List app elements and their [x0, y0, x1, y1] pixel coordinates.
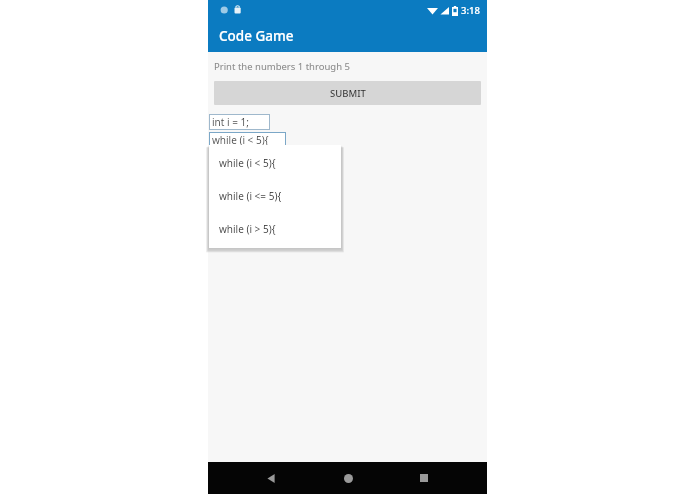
button[interactable]: while (i <= 5){ [209, 171, 341, 204]
button[interactable]: while (i < 5){ [209, 145, 341, 171]
button[interactable]: while (i > 5){ [209, 204, 341, 237]
button[interactable]: SUBMIT [214, 81, 481, 105]
staticText: Print the numbers 1 through 5 [214, 60, 350, 73]
button[interactable]: while (i < 5){ [209, 132, 286, 148]
staticText: while (i < 5){ [212, 133, 269, 147]
button[interactable]: Recent apps [413, 467, 435, 489]
button[interactable]: Back [260, 467, 282, 489]
staticText: while (i < 5){ [219, 156, 276, 170]
button[interactable]: Home [337, 467, 359, 489]
staticText: Code Game [219, 27, 294, 45]
staticText: 3:18 [461, 4, 480, 17]
button[interactable]: int i = 1; [209, 114, 270, 130]
staticText: int i = 1; [212, 115, 249, 129]
staticText: while (i <= 5){ [219, 189, 282, 203]
staticText: SUBMIT [330, 87, 366, 100]
staticText: while (i > 5){ [219, 222, 276, 236]
